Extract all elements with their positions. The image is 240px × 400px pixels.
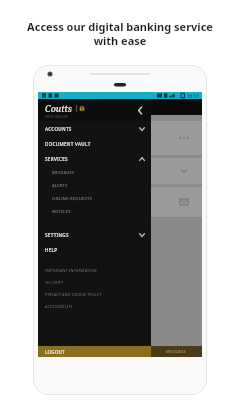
button[interactable]: MESSAGE: [151, 346, 202, 357]
staticText: MESSAGE: [166, 349, 187, 354]
staticText: ACCOUNTS: [45, 126, 139, 132]
button[interactable]: ACCOUNTS: [38, 121, 151, 136]
staticText: SECURITY: [45, 280, 64, 285]
staticText: ACCESSIBILITY: [45, 304, 73, 309]
button[interactable]: SETTINGS: [38, 227, 151, 242]
button[interactable]: NOTICES: [38, 205, 151, 218]
staticText: IMPORTANT INFORMATION: [45, 268, 97, 273]
staticText: GROUP ADVISORY: [45, 115, 68, 119]
staticText: LOGOUT: [45, 349, 65, 355]
staticText: SETTINGS: [45, 232, 139, 238]
button[interactable]: ALERTS: [38, 179, 151, 192]
staticText: MESSAGES: [52, 170, 75, 176]
button[interactable]: LOGOUT: [38, 346, 151, 357]
button[interactable]: DOCUMENT VAULT: [38, 136, 151, 151]
button[interactable]: MESSAGES: [38, 166, 151, 179]
button[interactable]: IMPORTANT INFORMATION: [38, 264, 151, 276]
button[interactable]: ACCESSIBILITY: [38, 300, 151, 312]
staticText: ONLINE REQUESTS: [52, 196, 93, 202]
staticText: DOCUMENT VAULT: [45, 141, 145, 147]
button[interactable]: ONLINE REQUESTS: [38, 192, 151, 205]
staticText: ALERTS: [52, 183, 68, 189]
button[interactable]: PRIVACY AND COOKIE POLICY: [38, 288, 151, 300]
button[interactable]: SERVICES: [38, 151, 151, 166]
staticText: Coutts: [45, 102, 73, 114]
staticText: 16:16: [187, 93, 199, 99]
staticText: HELP: [45, 247, 145, 253]
button[interactable]: HELP: [38, 242, 151, 257]
button[interactable]: SECURITY: [38, 276, 151, 288]
staticText: SERVICES: [45, 156, 139, 162]
staticText: Access our digital banking service with …: [14, 19, 226, 48]
button[interactable]: Close navigation drawer: [134, 104, 146, 116]
staticText: NOTICES: [52, 209, 71, 215]
staticText: PRIVACY AND COOKIE POLICY: [45, 292, 102, 297]
